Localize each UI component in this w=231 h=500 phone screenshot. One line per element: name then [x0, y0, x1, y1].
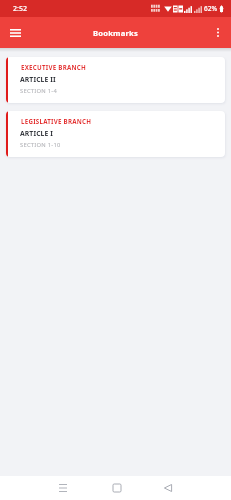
staticText: ARTICLE I: [20, 129, 54, 138]
button[interactable]: LEGISLATIVE BRANCH: [6, 111, 225, 157]
button[interactable]: Home: [107, 478, 127, 498]
button[interactable]: Recent apps: [53, 478, 73, 498]
staticText: 2:52: [13, 4, 27, 14]
button[interactable]: EXECUTIVE BRANCH: [6, 57, 225, 103]
staticText: 62%: [204, 4, 217, 13]
staticText: SECTION 1-4: [20, 87, 57, 95]
button[interactable]: More options: [204, 19, 231, 46]
button[interactable]: Back: [158, 478, 178, 498]
staticText: SECTION 1-10: [20, 141, 61, 149]
staticText: ARTICLE II: [20, 75, 56, 84]
button[interactable]: Open navigation drawer: [2, 19, 29, 46]
staticText: Bookmarks: [93, 28, 138, 38]
staticText: LEGISLATIVE BRANCH: [21, 117, 92, 125]
staticText: EXECUTIVE BRANCH: [21, 63, 86, 71]
